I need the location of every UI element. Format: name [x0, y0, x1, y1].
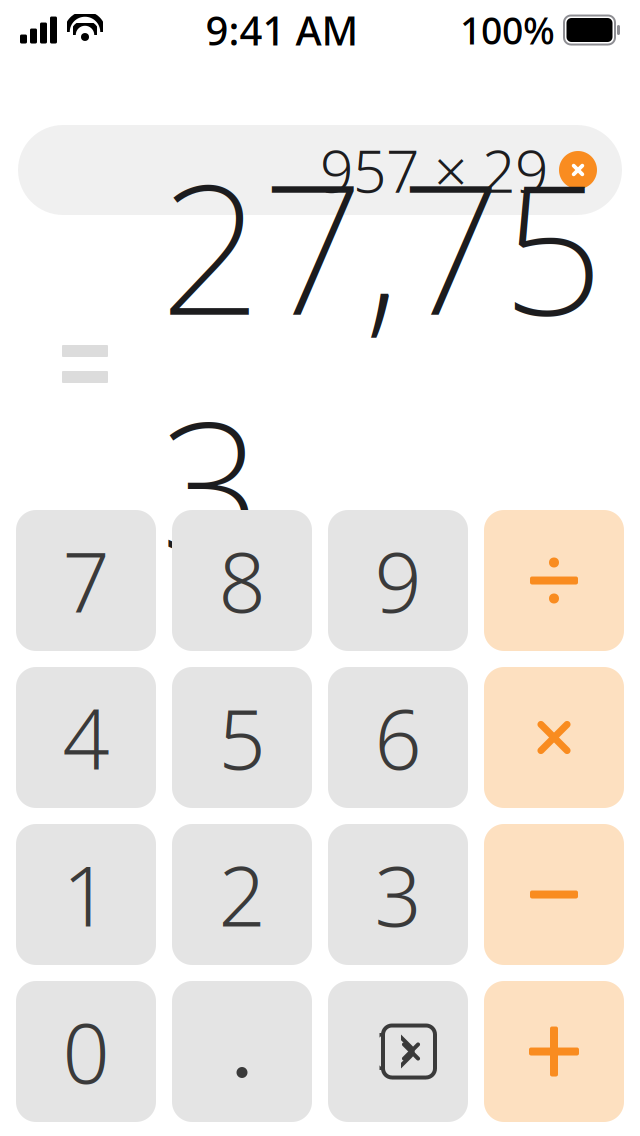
- staticText: 27,753: [160, 127, 604, 601]
- button[interactable]: Divide: [484, 510, 624, 651]
- button[interactable]: 5: [172, 667, 312, 808]
- button[interactable]: Multiply: [484, 667, 624, 808]
- staticText: 100%: [460, 5, 555, 55]
- button[interactable]: Clear: [548, 125, 608, 215]
- staticText: 3: [374, 840, 421, 949]
- staticText: 5: [218, 683, 265, 792]
- button[interactable]: 0: [16, 981, 156, 1122]
- staticText: 9:41 AM: [205, 3, 358, 56]
- staticText: 6: [374, 683, 421, 792]
- button[interactable]: 8: [172, 510, 312, 651]
- button[interactable]: 2: [172, 824, 312, 965]
- button[interactable]: 7: [16, 510, 156, 651]
- button[interactable]: Delete: [328, 981, 468, 1122]
- staticText: 957 × 29: [320, 131, 548, 209]
- button[interactable]: Decimal point: [172, 981, 312, 1122]
- button[interactable]: 6: [328, 667, 468, 808]
- staticText: 7: [62, 526, 109, 635]
- staticText: 9: [374, 526, 421, 635]
- button[interactable]: 1: [16, 824, 156, 965]
- staticText: 2: [218, 840, 265, 949]
- button[interactable]: 3: [328, 824, 468, 965]
- button[interactable]: 9: [328, 510, 468, 651]
- button[interactable]: Add: [484, 981, 624, 1122]
- button[interactable]: Subtract: [484, 824, 624, 965]
- button[interactable]: 4: [16, 667, 156, 808]
- staticText: 0: [62, 997, 109, 1106]
- staticText: 4: [62, 683, 109, 792]
- staticText: 1: [62, 840, 109, 949]
- staticText: 8: [218, 526, 265, 635]
